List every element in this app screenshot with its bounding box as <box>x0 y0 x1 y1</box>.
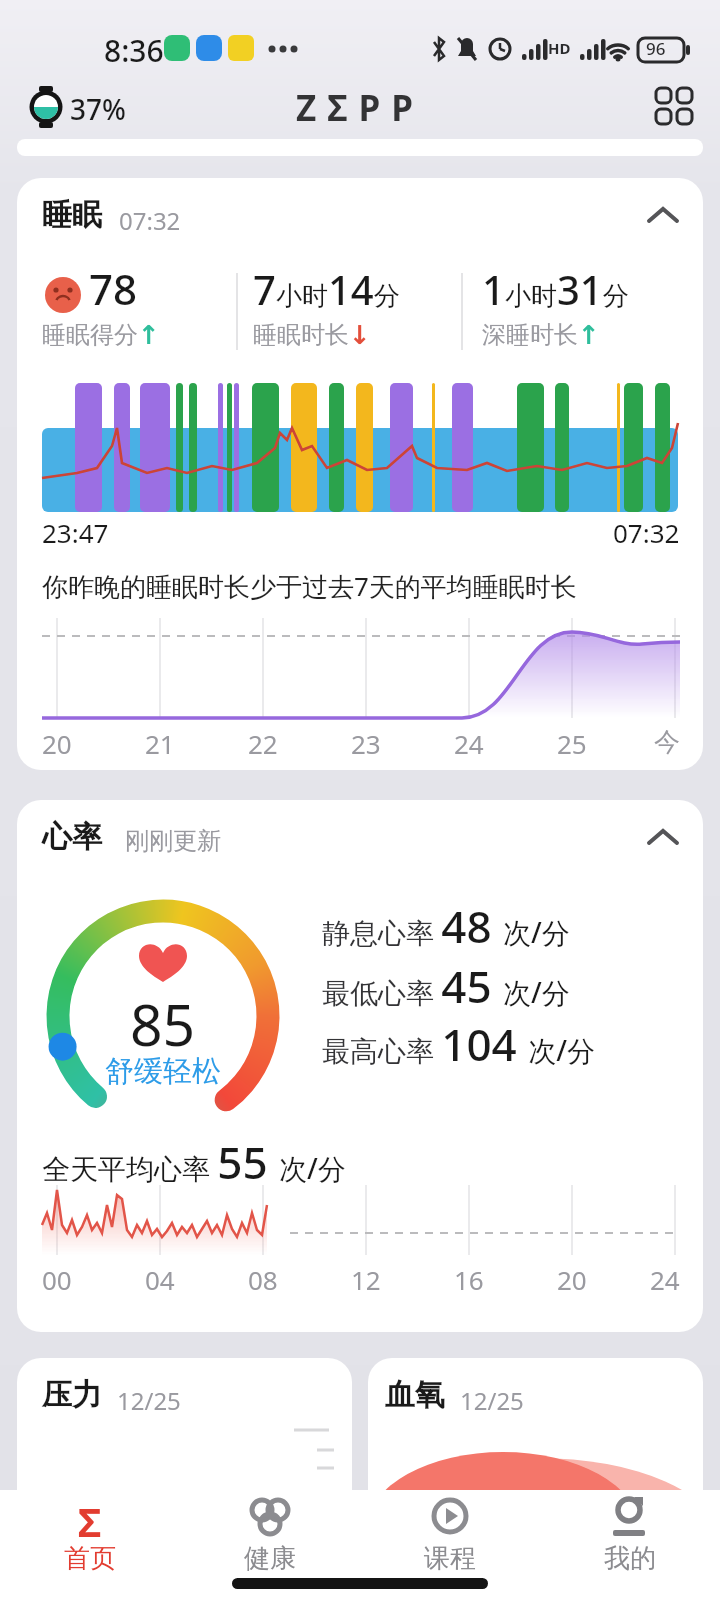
staticText: 85 <box>130 985 196 1063</box>
staticText: 24 <box>454 726 484 761</box>
staticText: 23:47 <box>42 515 109 550</box>
button[interactable] <box>647 206 679 224</box>
staticText: 今 <box>654 726 680 759</box>
staticText: HD <box>548 38 571 58</box>
staticText: ZΣPP <box>296 84 425 132</box>
button[interactable]: 健康 <box>215 1494 325 1584</box>
staticText: 12/25 <box>117 1384 181 1417</box>
staticText: 深睡时长 <box>482 320 578 350</box>
staticText: 96 <box>646 37 666 60</box>
staticText: 20 <box>557 1262 587 1297</box>
staticText: 07:32 <box>613 515 680 550</box>
staticText: 我的 <box>604 1542 656 1575</box>
staticText: 37% <box>70 90 126 128</box>
staticText: 全天平均心率 55 次/分 <box>42 1132 346 1192</box>
staticText: 04 <box>145 1262 175 1297</box>
staticText: 1小时31分 <box>482 262 629 316</box>
staticText: Σ <box>78 1494 102 1548</box>
button[interactable]: 课程 <box>395 1494 505 1584</box>
staticText: 血氧 <box>385 1376 445 1414</box>
staticText: 12 <box>351 1262 381 1297</box>
staticText: 21 <box>145 726 175 761</box>
staticText: 健康 <box>244 1542 296 1575</box>
staticText: 8:36 <box>104 30 164 71</box>
staticText: 22 <box>248 726 278 761</box>
staticText: 7小时14分 <box>253 262 400 316</box>
staticText: 首页 <box>64 1542 116 1575</box>
staticText: 08 <box>248 1262 278 1297</box>
staticText: 78 <box>89 260 138 317</box>
staticText: ↑ <box>578 320 600 350</box>
button[interactable]: 压力 <box>17 1358 352 1490</box>
staticText: 00 <box>42 1262 72 1297</box>
staticText: 压力 <box>42 1376 102 1414</box>
staticText: 最低心率 45 次/分 <box>322 956 570 1016</box>
staticText: 睡眠得分 <box>42 320 138 350</box>
staticText: 23 <box>351 726 381 761</box>
staticText: 最高心率 104 次/分 <box>322 1014 596 1074</box>
staticText: 你昨晚的睡眠时长少于过去7天的平均睡眠时长 <box>42 568 577 604</box>
staticText: 睡眠 <box>42 196 102 234</box>
staticText: 静息心率 48 次/分 <box>322 896 570 956</box>
staticText: 睡眠时长 <box>253 320 349 350</box>
staticText: 舒缓轻松 <box>105 1053 221 1090</box>
button[interactable] <box>647 828 679 846</box>
button[interactable]: 血氧 <box>368 1358 703 1490</box>
staticText: 课程 <box>424 1542 476 1575</box>
staticText: 07:32 <box>119 204 181 237</box>
button[interactable]: 心率 <box>17 800 703 1332</box>
staticText: 16 <box>454 1262 484 1297</box>
staticText: 25 <box>557 726 587 761</box>
button[interactable] <box>656 88 694 126</box>
staticText: 12/25 <box>460 1384 524 1417</box>
staticText: ↑ <box>138 320 160 350</box>
staticText: 20 <box>42 726 72 761</box>
staticText: 刚刚更新 <box>125 826 221 856</box>
staticText: ↓ <box>349 320 371 350</box>
button[interactable]: 睡眠 <box>17 178 703 770</box>
staticText: 心率 <box>42 818 102 856</box>
staticText: 24 <box>650 1262 680 1297</box>
button[interactable]: Σ <box>35 1494 145 1584</box>
button[interactable]: 我的 <box>575 1494 685 1584</box>
